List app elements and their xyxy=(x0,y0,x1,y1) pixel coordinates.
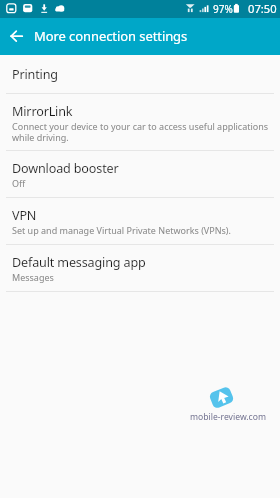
staticText: Off xyxy=(12,177,270,189)
button[interactable]: Download booster xyxy=(0,151,280,198)
button[interactable]: MirrorLink xyxy=(0,94,280,151)
staticText: More connection settings xyxy=(34,27,188,45)
staticText: Connect your device to your car to acces… xyxy=(12,120,270,143)
button[interactable]: Navigate up xyxy=(5,25,28,48)
staticText: Set up and manage Virtual Private Networ… xyxy=(12,224,270,236)
button[interactable]: Printing xyxy=(0,55,280,94)
staticText: 07:50 xyxy=(248,1,277,16)
staticText: Printing xyxy=(12,66,58,83)
button[interactable]: Default messaging app xyxy=(0,245,280,292)
button[interactable]: VPN xyxy=(0,198,280,245)
staticText: VPN xyxy=(12,207,37,224)
staticText: Default messaging app xyxy=(12,254,146,271)
staticText: mobile-review.com xyxy=(190,411,266,423)
staticText: MirrorLink xyxy=(12,103,73,120)
staticText: 97% xyxy=(213,2,233,16)
staticText: Download booster xyxy=(12,160,119,177)
staticText: Messages xyxy=(12,271,270,283)
